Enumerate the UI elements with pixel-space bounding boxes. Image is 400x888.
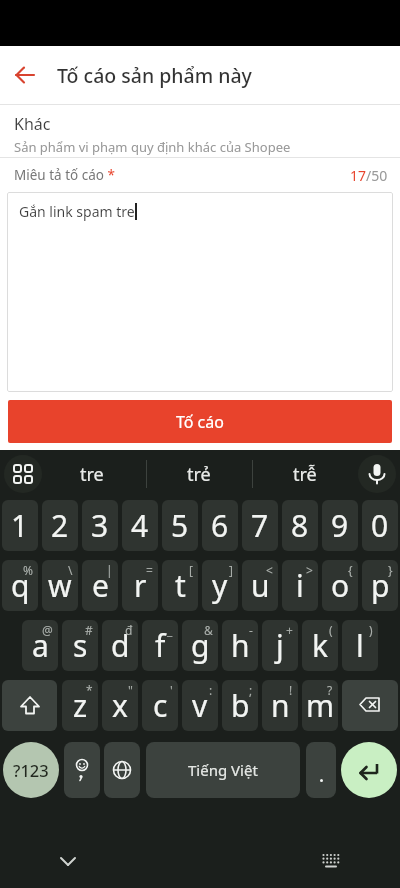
button[interactable]: 6 bbox=[202, 500, 238, 551]
button[interactable]: h bbox=[222, 620, 258, 671]
staticText: k bbox=[312, 625, 329, 666]
button[interactable]: Tố cáo bbox=[8, 400, 392, 443]
button[interactable] bbox=[104, 742, 140, 798]
button[interactable] bbox=[64, 742, 100, 798]
button[interactable]: p bbox=[362, 560, 398, 611]
staticText: l bbox=[356, 625, 364, 666]
staticText: { bbox=[348, 562, 353, 578]
button[interactable] bbox=[342, 680, 398, 731]
button[interactable]: x bbox=[102, 680, 138, 731]
button[interactable]: Tiếng Việt bbox=[146, 742, 300, 798]
button[interactable]: v bbox=[182, 680, 218, 731]
button[interactable]: l bbox=[342, 620, 378, 671]
button[interactable]: t bbox=[162, 560, 198, 611]
staticText: Tố cáo bbox=[176, 411, 224, 433]
staticText: _ bbox=[167, 622, 173, 638]
button[interactable]: g bbox=[182, 620, 218, 671]
staticText: n bbox=[271, 685, 290, 726]
button[interactable] bbox=[4, 455, 42, 493]
staticText: [ bbox=[189, 562, 193, 578]
button[interactable]: 3 bbox=[82, 500, 118, 551]
staticText: tre bbox=[80, 462, 104, 487]
staticText: ( bbox=[329, 622, 333, 638]
staticText: u bbox=[251, 565, 270, 606]
staticText: + bbox=[286, 622, 293, 638]
button[interactable]: k bbox=[302, 620, 338, 671]
staticText: b bbox=[231, 685, 250, 726]
button[interactable]: e bbox=[82, 560, 118, 611]
staticText: r bbox=[134, 565, 147, 606]
button[interactable]: c bbox=[142, 680, 178, 731]
staticText: - bbox=[249, 622, 253, 638]
staticText: Gắn link spam tre bbox=[19, 202, 135, 221]
button[interactable]: 4 bbox=[122, 500, 158, 551]
button[interactable]: r bbox=[122, 560, 158, 611]
staticText: i bbox=[296, 565, 304, 606]
staticText: m bbox=[306, 685, 335, 726]
button[interactable]: 9 bbox=[322, 500, 358, 551]
button[interactable]: trễ bbox=[254, 450, 356, 498]
staticText: } bbox=[388, 562, 393, 578]
staticText: o bbox=[331, 565, 350, 606]
button[interactable]: Gắn link spam tre bbox=[7, 192, 393, 392]
button[interactable]: 8 bbox=[282, 500, 318, 551]
staticText: ?123 bbox=[13, 759, 49, 781]
button[interactable] bbox=[306, 742, 336, 798]
staticText: y bbox=[212, 565, 228, 606]
staticText: @ bbox=[42, 622, 53, 638]
button[interactable]: z bbox=[62, 680, 98, 731]
staticText: 9 bbox=[331, 505, 349, 546]
staticText: t bbox=[175, 565, 186, 606]
staticText: d bbox=[111, 625, 130, 666]
staticText: | bbox=[106, 562, 113, 578]
staticText: p bbox=[371, 565, 390, 606]
staticText: z bbox=[73, 685, 88, 726]
button[interactable]: d bbox=[102, 620, 138, 671]
button[interactable]: m bbox=[302, 680, 338, 731]
button[interactable]: u bbox=[242, 560, 278, 611]
button[interactable]: tre bbox=[42, 450, 142, 498]
staticText: 8 bbox=[291, 505, 309, 546]
staticText: s bbox=[73, 625, 88, 666]
staticText: 5 bbox=[171, 505, 189, 546]
button[interactable]: ?123 bbox=[3, 742, 59, 798]
staticText: % bbox=[23, 562, 33, 578]
staticText: x bbox=[112, 685, 128, 726]
button[interactable]: y bbox=[202, 560, 238, 611]
button[interactable]: n bbox=[262, 680, 298, 731]
button[interactable]: b bbox=[222, 680, 258, 731]
button[interactable]: 2 bbox=[42, 500, 78, 551]
staticText: e bbox=[92, 565, 109, 606]
button[interactable]: 5 bbox=[162, 500, 198, 551]
staticText: 6 bbox=[211, 505, 229, 546]
button[interactable]: o bbox=[322, 560, 358, 611]
button[interactable]: 0 bbox=[362, 500, 398, 551]
staticText: : bbox=[209, 682, 213, 698]
button[interactable]: trẻ bbox=[148, 450, 250, 498]
staticText: > bbox=[306, 562, 313, 578]
staticText: & bbox=[204, 622, 213, 638]
button[interactable]: w bbox=[42, 560, 78, 611]
staticText: ' bbox=[170, 682, 173, 698]
button[interactable]: i bbox=[282, 560, 318, 611]
button[interactable]: 7 bbox=[242, 500, 278, 551]
button[interactable] bbox=[56, 850, 80, 874]
button[interactable]: f bbox=[142, 620, 178, 671]
staticText: ? bbox=[327, 682, 333, 698]
button[interactable]: s bbox=[62, 620, 98, 671]
button[interactable]: q bbox=[2, 560, 38, 611]
staticText: ! bbox=[289, 682, 293, 698]
button[interactable] bbox=[318, 848, 344, 874]
button[interactable] bbox=[341, 742, 397, 798]
staticText: Khác bbox=[14, 113, 51, 135]
button[interactable] bbox=[2, 680, 57, 731]
staticText: j bbox=[276, 625, 284, 666]
staticText: \ bbox=[68, 562, 73, 578]
button[interactable]: 1 bbox=[2, 500, 38, 551]
button[interactable] bbox=[358, 455, 396, 493]
button[interactable]: a bbox=[22, 620, 58, 671]
staticText: h bbox=[231, 625, 250, 666]
button[interactable] bbox=[0, 46, 50, 104]
button[interactable]: j bbox=[262, 620, 298, 671]
staticText: 3 bbox=[91, 505, 109, 546]
